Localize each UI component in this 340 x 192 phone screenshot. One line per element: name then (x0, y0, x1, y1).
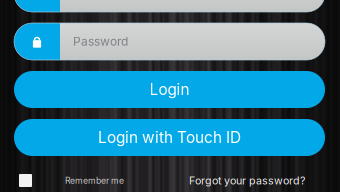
button[interactable]: Login with Touch ID (14, 119, 325, 156)
staticText: Login (149, 80, 189, 99)
button[interactable]: Remember me (14, 174, 124, 187)
staticText: Forgot your password? (189, 174, 305, 187)
staticText: Remember me (65, 175, 124, 186)
staticText: Password (73, 34, 128, 49)
button[interactable]: Forgot your password? (189, 174, 325, 187)
button[interactable]: Login (14, 71, 325, 108)
staticText: Login with Touch ID (98, 128, 241, 147)
